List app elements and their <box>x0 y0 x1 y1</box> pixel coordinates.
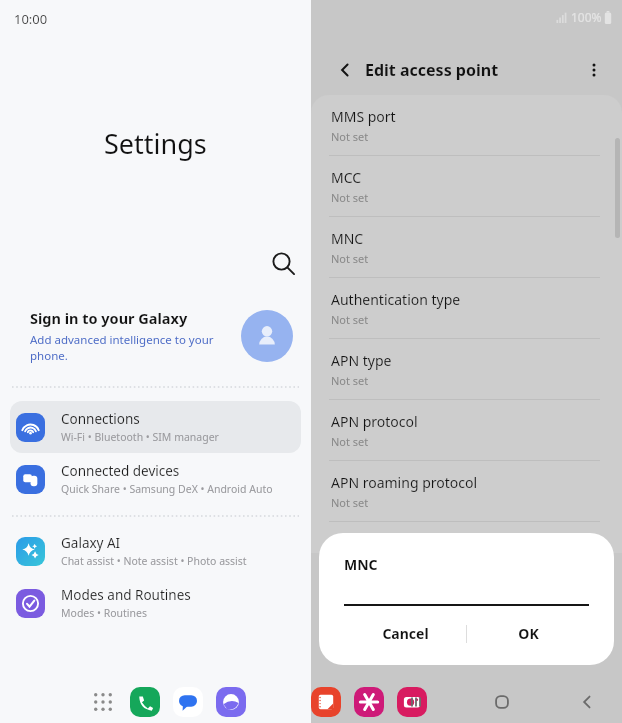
button[interactable]: Modes and Routines <box>10 577 301 629</box>
button[interactable]: APN type <box>311 339 622 399</box>
staticText: OK <box>518 624 539 643</box>
button[interactable]: Cancel <box>344 616 466 651</box>
button[interactable]: Apps <box>90 689 116 715</box>
staticText: Not set <box>331 251 369 266</box>
button[interactable]: Galaxy AI <box>10 525 301 577</box>
button[interactable]: OK <box>467 616 589 651</box>
staticText: Quick Share • Samsung DeX • Android Auto <box>61 482 273 496</box>
button[interactable]: MMS port <box>311 95 622 155</box>
button[interactable]: Sign in to your Galaxy <box>0 300 311 373</box>
staticText: Wi-Fi • Bluetooth • SIM manager <box>61 430 219 444</box>
button[interactable]: Back <box>331 56 359 84</box>
staticText: Galaxy AI <box>61 534 121 552</box>
staticText: Sign in to your Galaxy <box>30 308 188 328</box>
staticText: MNC <box>344 555 378 574</box>
staticText: 100% <box>571 9 602 25</box>
button[interactable]: MNC <box>311 217 622 277</box>
button[interactable]: App <box>216 687 246 717</box>
button[interactable]: Connected devices <box>10 453 301 505</box>
staticText: Edit access point <box>365 59 499 81</box>
button[interactable]: Connections <box>10 401 301 453</box>
button[interactable]: More options <box>580 56 608 84</box>
staticText: Modes and Routines <box>61 586 191 604</box>
button[interactable]: App <box>311 687 341 717</box>
staticText: MCC <box>331 168 362 187</box>
button[interactable]: MCC <box>311 156 622 216</box>
button[interactable]: App <box>130 687 160 717</box>
staticText: Not set <box>331 312 369 327</box>
button[interactable]: Home <box>485 685 519 719</box>
staticText: Settings <box>104 125 207 162</box>
staticText: MNC <box>331 229 364 248</box>
button[interactable]: Search <box>268 248 298 278</box>
button[interactable]: Recents <box>399 685 433 719</box>
staticText: Modes • Routines <box>61 606 148 620</box>
staticText: Cancel <box>382 624 429 643</box>
button[interactable]: Authentication type <box>311 278 622 338</box>
staticText: Chat assist • Note assist • Photo assist <box>61 554 247 568</box>
staticText: APN type <box>331 351 392 370</box>
button[interactable]: Back <box>570 685 604 719</box>
staticText: APN protocol <box>331 412 418 431</box>
staticText: Not set <box>331 373 369 388</box>
staticText: Not set <box>331 129 369 144</box>
staticText: 10:00 <box>14 10 48 28</box>
button[interactable]: App <box>354 687 384 717</box>
button[interactable]: App <box>397 687 427 717</box>
staticText: Connections <box>61 410 140 428</box>
button[interactable]: APN protocol <box>311 400 622 460</box>
staticText: Authentication type <box>331 290 461 309</box>
button[interactable]: App <box>173 687 203 717</box>
button[interactable]: Mobile virtual network operator type <box>311 522 622 553</box>
button[interactable]: APN roaming protocol <box>311 461 622 521</box>
staticText: Connected devices <box>61 462 180 480</box>
staticText: Not set <box>331 190 369 205</box>
staticText: APN roaming protocol <box>331 473 478 492</box>
staticText: MMS port <box>331 107 396 126</box>
staticText: Not set <box>331 434 369 449</box>
staticText: Not set <box>331 495 369 510</box>
staticText: Add advanced intelligence to your phone. <box>30 332 233 363</box>
